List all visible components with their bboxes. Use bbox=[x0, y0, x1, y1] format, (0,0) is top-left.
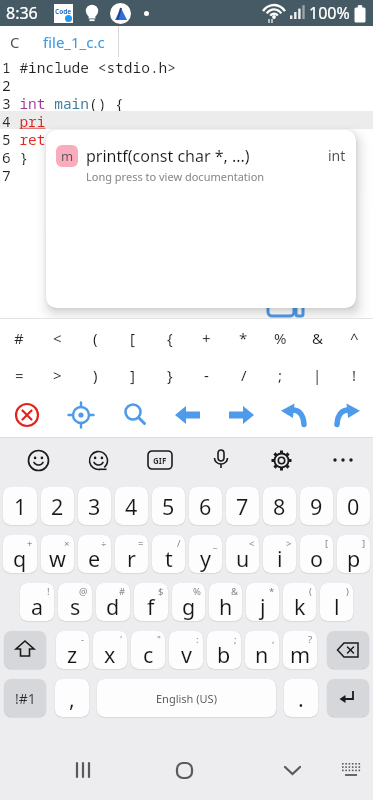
staticText: u bbox=[236, 544, 250, 573]
button[interactable] bbox=[267, 393, 320, 437]
button[interactable]: j bbox=[246, 583, 279, 621]
button[interactable]: ] bbox=[114, 356, 151, 393]
button[interactable] bbox=[312, 438, 373, 482]
button[interactable]: f bbox=[134, 583, 168, 621]
button[interactable]: 6 bbox=[189, 487, 222, 525]
button[interactable]: s bbox=[58, 583, 92, 621]
button[interactable]: 9 bbox=[300, 487, 333, 525]
button[interactable] bbox=[4, 631, 46, 669]
button[interactable]: i bbox=[263, 535, 296, 573]
staticText: , bbox=[272, 633, 275, 646]
button[interactable]: ^ bbox=[336, 319, 373, 356]
button[interactable]: 8 bbox=[263, 487, 296, 525]
button[interactable]: l bbox=[320, 583, 353, 621]
button[interactable]: a bbox=[20, 583, 54, 621]
button[interactable]: - bbox=[188, 356, 225, 393]
button[interactable]: y bbox=[189, 535, 222, 573]
button[interactable]: x bbox=[93, 631, 127, 669]
staticText: file_1_c.c bbox=[43, 32, 105, 52]
button[interactable]: d bbox=[96, 583, 130, 621]
button[interactable]: c bbox=[131, 631, 165, 669]
button[interactable]: < bbox=[38, 319, 76, 356]
button[interactable]: k bbox=[283, 583, 316, 621]
button[interactable]: 2 bbox=[41, 487, 74, 525]
button[interactable]: v bbox=[169, 631, 203, 669]
staticText: English (US) bbox=[156, 691, 217, 706]
staticText: ) bbox=[346, 585, 349, 598]
button[interactable] bbox=[268, 750, 316, 790]
button[interactable]: ) bbox=[76, 356, 114, 393]
button[interactable] bbox=[268, 298, 304, 318]
button[interactable]: w bbox=[41, 535, 74, 573]
staticText: d bbox=[106, 592, 120, 621]
button[interactable] bbox=[8, 438, 68, 482]
button[interactable]: u bbox=[226, 535, 259, 573]
button[interactable]: ( bbox=[76, 319, 114, 356]
button[interactable]: [ bbox=[114, 319, 151, 356]
button[interactable]: . bbox=[284, 679, 318, 717]
staticText: × bbox=[64, 537, 70, 550]
button[interactable]: 0 bbox=[337, 487, 370, 525]
button[interactable]: GIF bbox=[129, 438, 190, 482]
button[interactable] bbox=[0, 393, 54, 437]
button[interactable]: C bbox=[0, 26, 30, 57]
button[interactable] bbox=[68, 438, 129, 482]
staticText: l bbox=[334, 592, 340, 621]
button[interactable] bbox=[60, 750, 108, 790]
button[interactable]: / bbox=[225, 356, 262, 393]
staticText: 2 bbox=[51, 492, 64, 521]
button[interactable]: English (US) bbox=[97, 679, 276, 717]
staticText: i bbox=[277, 544, 283, 573]
staticText: C bbox=[10, 32, 20, 52]
button[interactable]: | bbox=[299, 356, 336, 393]
button[interactable]: 5 bbox=[152, 487, 185, 525]
button[interactable]: h bbox=[209, 583, 242, 621]
button[interactable]: g bbox=[172, 583, 205, 621]
button[interactable]: & bbox=[299, 319, 336, 356]
button[interactable]: b bbox=[207, 631, 241, 669]
button[interactable] bbox=[160, 750, 208, 790]
button[interactable]: * bbox=[225, 319, 262, 356]
button[interactable]: + bbox=[188, 319, 225, 356]
button[interactable] bbox=[251, 438, 312, 482]
button[interactable]: !#1 bbox=[4, 679, 46, 717]
button[interactable]: } bbox=[151, 356, 188, 393]
staticText: ! bbox=[352, 365, 357, 385]
button[interactable]: ! bbox=[336, 356, 373, 393]
button[interactable]: n bbox=[245, 631, 279, 669]
button[interactable]: 3 bbox=[78, 487, 111, 525]
button[interactable]: ; bbox=[262, 356, 299, 393]
button[interactable] bbox=[190, 438, 251, 482]
button[interactable] bbox=[327, 679, 369, 717]
button[interactable] bbox=[334, 752, 368, 786]
button[interactable] bbox=[161, 393, 214, 437]
button[interactable]: m bbox=[283, 631, 317, 669]
button[interactable]: { bbox=[151, 319, 188, 356]
staticText: ' bbox=[120, 633, 123, 646]
button[interactable]: r bbox=[115, 535, 148, 573]
staticText: 1 bbox=[14, 492, 27, 521]
button[interactable]: e bbox=[78, 535, 111, 573]
button[interactable] bbox=[320, 393, 373, 437]
button[interactable]: = bbox=[0, 356, 38, 393]
button[interactable]: % bbox=[262, 319, 299, 356]
button[interactable]: o bbox=[300, 535, 333, 573]
button[interactable] bbox=[54, 393, 108, 437]
button[interactable] bbox=[108, 393, 161, 437]
button[interactable]: , bbox=[55, 679, 89, 717]
button[interactable]: # bbox=[0, 319, 38, 356]
button[interactable]: p bbox=[337, 535, 370, 573]
staticText: 3 bbox=[88, 492, 101, 521]
button[interactable]: z bbox=[56, 631, 89, 669]
button[interactable]: 7 bbox=[226, 487, 259, 525]
button[interactable] bbox=[214, 393, 267, 437]
button[interactable]: 1 bbox=[3, 487, 37, 525]
button[interactable]: q bbox=[3, 535, 37, 573]
button[interactable]: m bbox=[46, 130, 356, 308]
button[interactable]: > bbox=[38, 356, 76, 393]
button[interactable] bbox=[327, 631, 369, 669]
button[interactable]: t bbox=[152, 535, 185, 573]
button[interactable]: file_1_c.c bbox=[30, 26, 118, 57]
staticText: 3 int main() { bbox=[2, 93, 124, 111]
button[interactable]: 4 bbox=[115, 487, 148, 525]
